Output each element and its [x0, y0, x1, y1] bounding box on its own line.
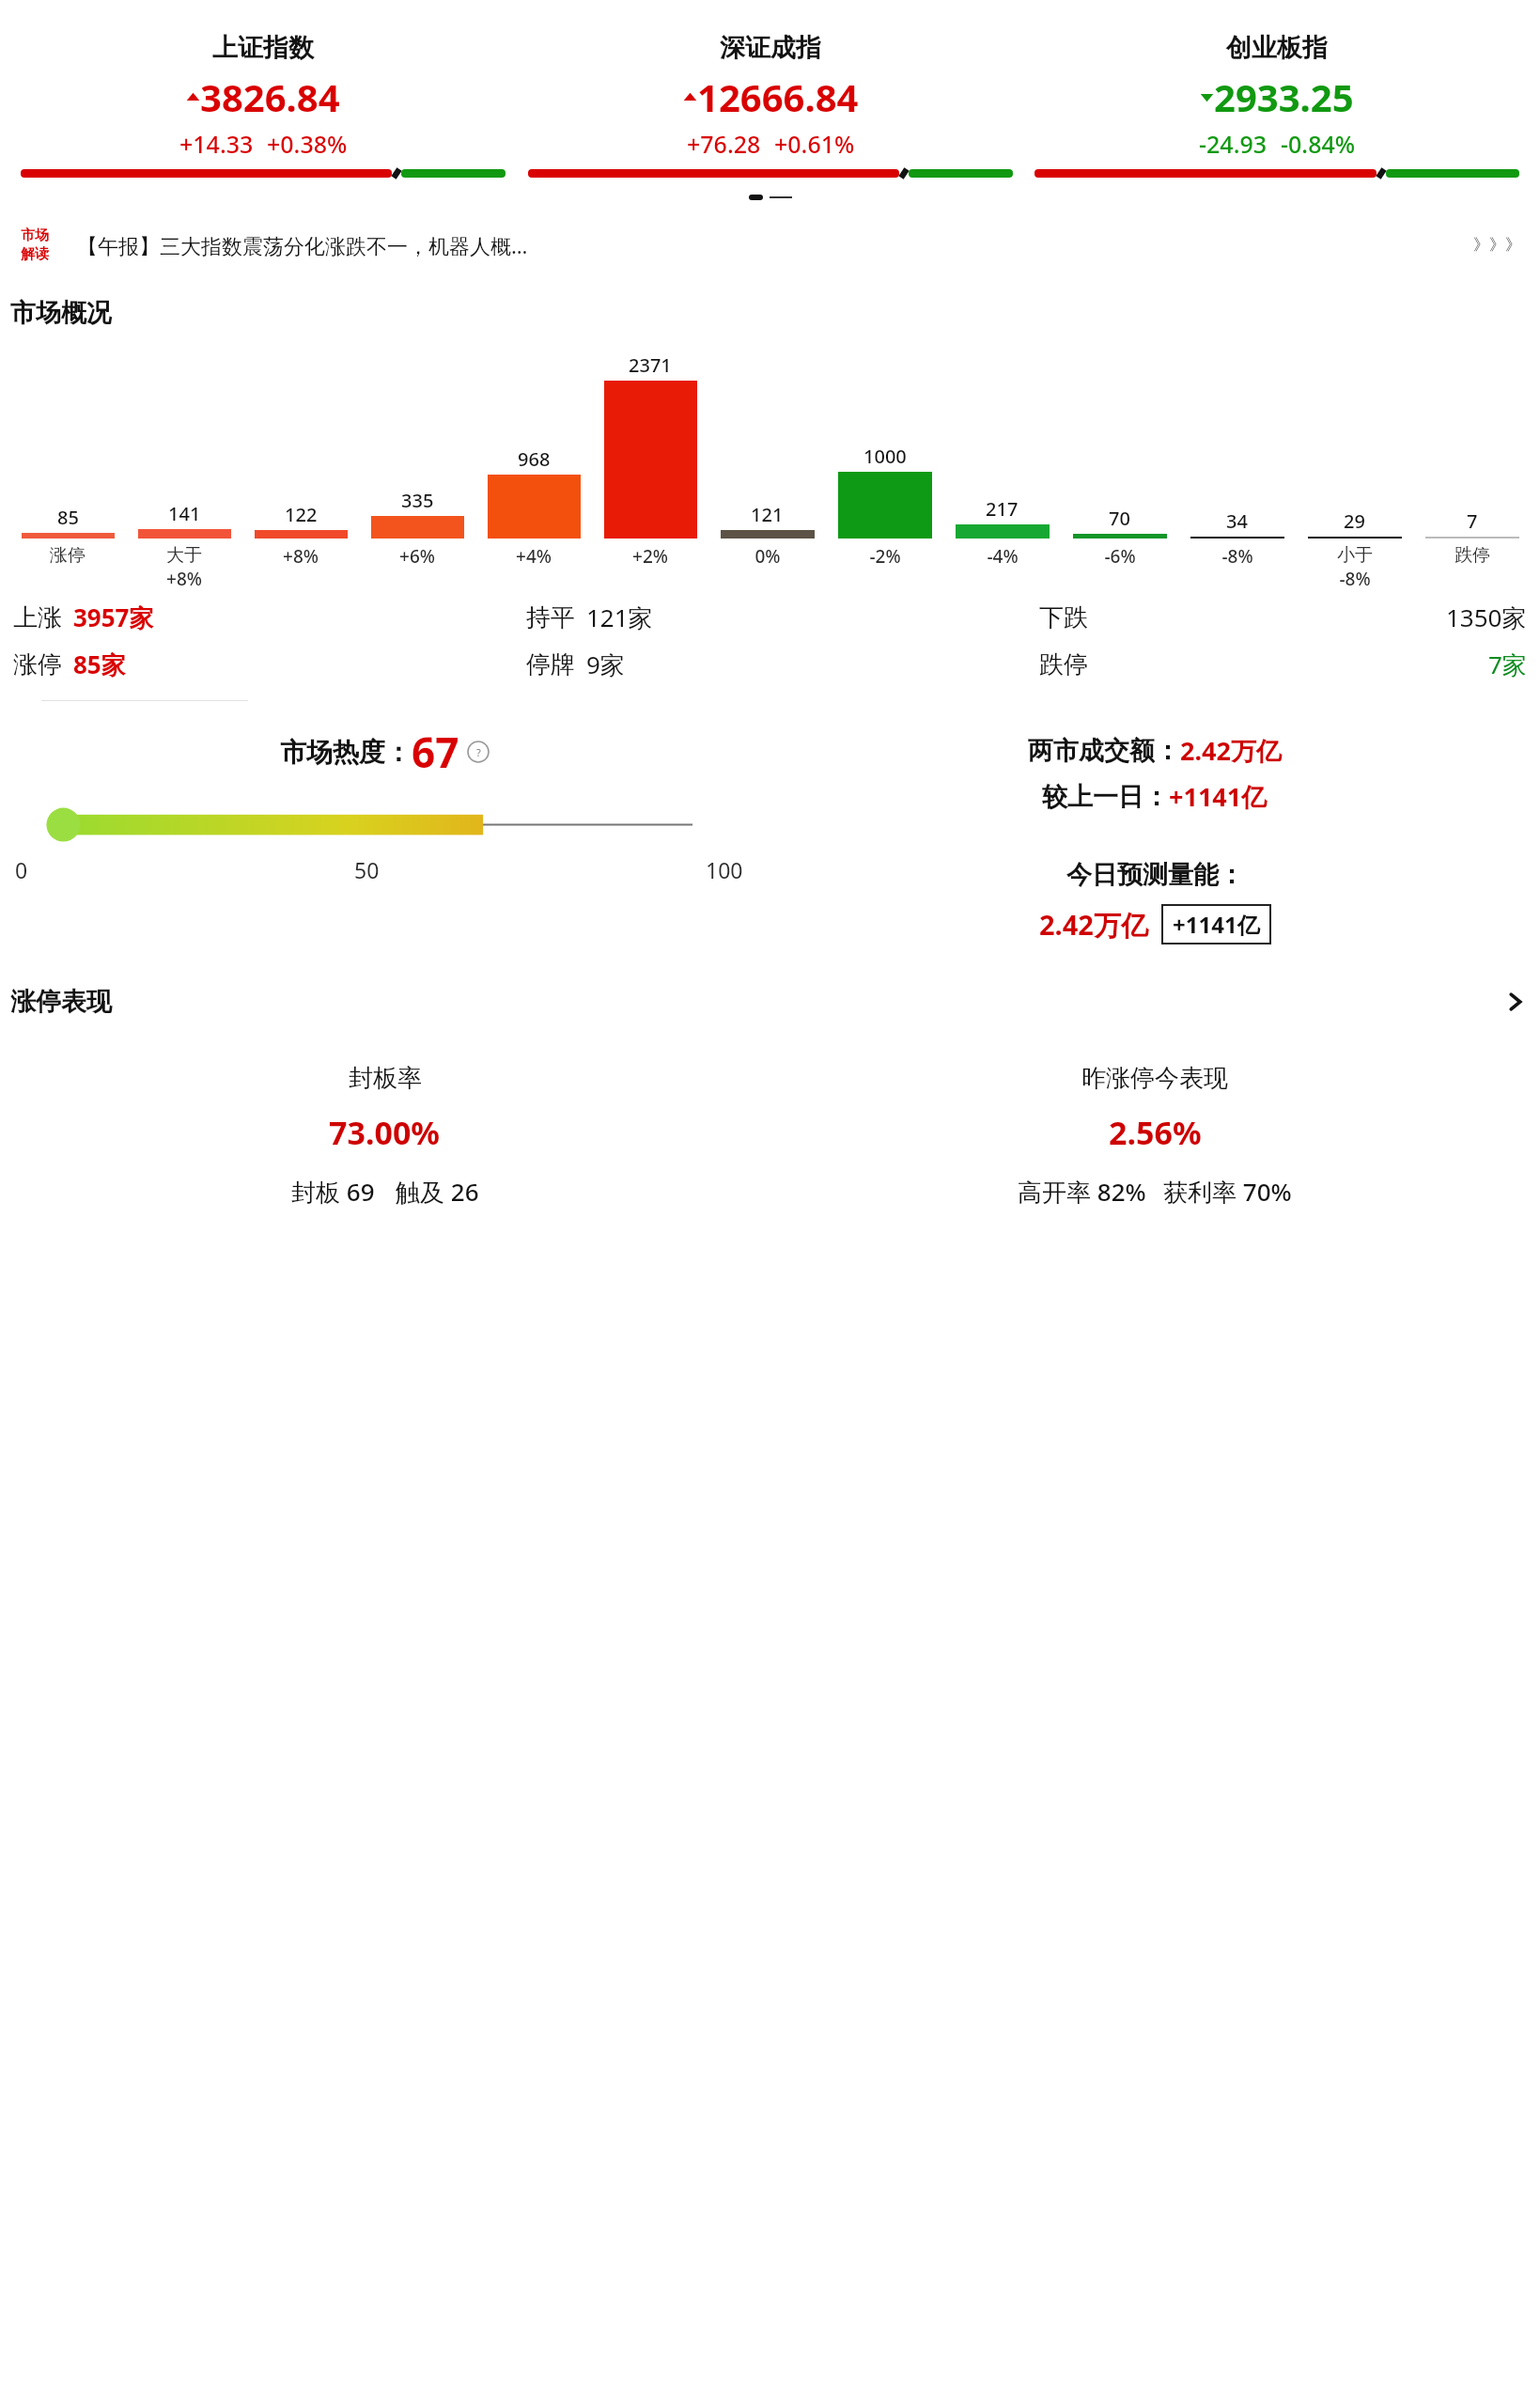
button[interactable]: 涨停表现: [0, 982, 1540, 1022]
staticText: 高开率 82%: [1018, 1175, 1146, 1209]
button[interactable]: 上证指数: [19, 32, 507, 178]
staticText: 67: [412, 724, 459, 780]
staticText: +4%: [516, 544, 552, 569]
staticText: 9家: [586, 648, 625, 681]
staticText: 持平: [526, 602, 575, 633]
staticText: 停牌: [526, 649, 575, 680]
staticText: 市场: [21, 226, 49, 244]
staticText: 3826.84: [200, 71, 340, 122]
other: 热度说明: [467, 741, 490, 763]
staticText: +1141亿: [1169, 779, 1268, 814]
button[interactable]: 创业板指: [1033, 32, 1521, 178]
staticText: ?: [476, 745, 481, 759]
staticText: -0.84%: [1281, 128, 1356, 160]
staticText: 下跌: [1039, 602, 1088, 633]
staticText: 70: [1109, 506, 1130, 531]
staticText: 【午报】三大指数震荡分化涨跌不一，机器人概…: [77, 231, 528, 259]
staticText: +2%: [632, 544, 668, 569]
staticText: 封板率: [349, 1063, 422, 1094]
staticText: 7家: [1488, 648, 1527, 681]
staticText: +14.33: [179, 128, 254, 160]
staticText: 335: [401, 488, 434, 513]
staticText: 141: [168, 501, 201, 526]
staticText: +0.38%: [267, 128, 348, 160]
staticText: 小于: [1337, 544, 1373, 567]
staticText: +76.28: [687, 128, 761, 160]
staticText: 上证指数: [212, 32, 314, 64]
staticText: 121: [751, 502, 784, 527]
staticText: 2.56%: [1109, 1111, 1202, 1154]
staticText: -4%: [987, 544, 1019, 569]
button[interactable]: 市场: [0, 221, 1540, 269]
staticText: 跌停: [1454, 544, 1490, 567]
button[interactable]: 深证成指: [526, 32, 1015, 178]
staticText: 217: [986, 496, 1019, 522]
staticText: 73.00%: [329, 1111, 441, 1154]
other: 查看涨停表现: [1501, 988, 1530, 1016]
staticText: 122: [285, 502, 318, 527]
staticText: +8%: [283, 544, 319, 569]
staticText: 2.42万亿: [1039, 906, 1148, 944]
staticText: 解读: [21, 245, 49, 263]
staticText: +6%: [399, 544, 435, 569]
staticText: 大于: [166, 544, 202, 567]
staticText: 29: [1344, 508, 1365, 534]
staticText: 1000: [863, 444, 907, 469]
staticText: 7: [1467, 508, 1478, 534]
staticText: -2%: [869, 544, 901, 569]
staticText: 121家: [586, 601, 653, 634]
staticText: 0%: [754, 544, 781, 569]
staticText: 3957家: [73, 601, 154, 634]
staticText: 12666.84: [697, 71, 859, 122]
staticText: 深证成指: [720, 32, 821, 64]
staticText: 》》》: [1473, 235, 1521, 255]
staticText: 跌停: [1039, 649, 1088, 680]
staticText: -8%: [1339, 567, 1371, 591]
button[interactable]: 昨涨停今表现: [770, 1063, 1540, 1209]
staticText: 涨停: [13, 649, 62, 680]
staticText: 2.42万亿: [1180, 733, 1282, 768]
button[interactable]: 封板率: [0, 1063, 770, 1209]
staticText: +1141亿: [1173, 909, 1260, 940]
staticText: 今日预测量能：: [1066, 859, 1244, 891]
staticText: 上涨: [13, 602, 62, 633]
staticText: 两市成交额：: [1028, 735, 1180, 767]
staticText: -6%: [1104, 544, 1136, 569]
staticText: 获利率 70%: [1163, 1175, 1292, 1209]
staticText: 34: [1226, 508, 1248, 534]
staticText: 85: [57, 505, 79, 530]
staticText: -8%: [1221, 544, 1253, 569]
staticText: +0.61%: [774, 128, 855, 160]
staticText: 市场热度：: [280, 736, 412, 769]
staticText: 968: [518, 446, 551, 472]
staticText: 1350家: [1446, 601, 1527, 634]
staticText: 0: [15, 855, 28, 884]
staticText: 较上一日：: [1042, 781, 1169, 813]
staticText: 触及 26: [396, 1175, 479, 1209]
staticText: 涨停表现: [10, 986, 112, 1018]
staticText: 涨停: [50, 544, 86, 567]
staticText: 100: [706, 855, 743, 884]
staticText: 2933.25: [1214, 71, 1354, 122]
staticText: 封板 69: [291, 1175, 375, 1209]
staticText: 50: [354, 855, 380, 884]
staticText: 2371: [629, 352, 672, 378]
staticText: 市场概况: [10, 297, 112, 329]
staticText: 昨涨停今表现: [1081, 1063, 1228, 1094]
staticText: +8%: [166, 567, 202, 591]
staticText: 85家: [73, 648, 126, 681]
staticText: 创业板指: [1226, 32, 1328, 64]
staticText: -24.93: [1199, 128, 1268, 160]
